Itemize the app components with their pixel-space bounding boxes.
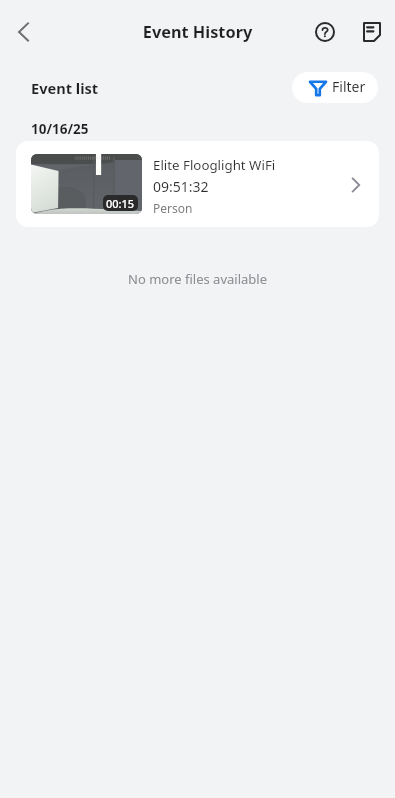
- button[interactable]: Notes: [351, 11, 393, 53]
- staticText: Event History: [0, 21, 395, 43]
- staticText: No more files available: [0, 270, 395, 288]
- staticText: Elite Flooglight WiFi: [153, 156, 276, 174]
- button[interactable]: 00:15: [16, 141, 379, 227]
- staticText: Filter: [332, 77, 366, 96]
- staticText: 09:51:32: [153, 177, 209, 196]
- staticText: Person: [153, 200, 193, 216]
- staticText: 00:15: [106, 196, 135, 211]
- button[interactable]: Back: [1, 10, 44, 53]
- staticText: Event list: [31, 78, 99, 98]
- button[interactable]: Filter: [292, 72, 378, 103]
- staticText: 10/16/25: [31, 120, 89, 138]
- button[interactable]: Help: [304, 11, 346, 53]
